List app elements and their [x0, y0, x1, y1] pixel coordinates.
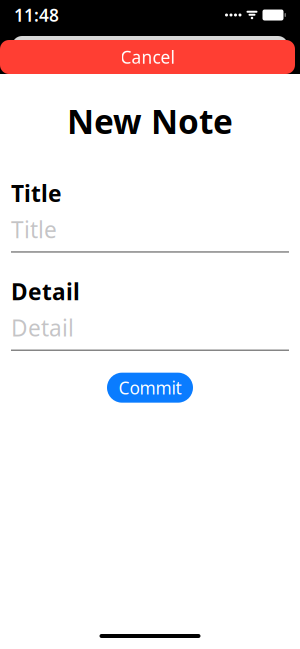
button[interactable]: Cancel [0, 40, 295, 74]
staticText: New Note [67, 99, 233, 143]
button[interactable]: Commit [107, 373, 193, 403]
staticText: Title [11, 214, 57, 244]
staticText: Title [11, 178, 62, 208]
staticText: Commit [118, 376, 181, 399]
staticText: Detail [11, 313, 74, 343]
staticText: Cancel [120, 45, 174, 68]
staticText: Detail [11, 276, 80, 307]
staticText: 11:48 [14, 3, 59, 26]
